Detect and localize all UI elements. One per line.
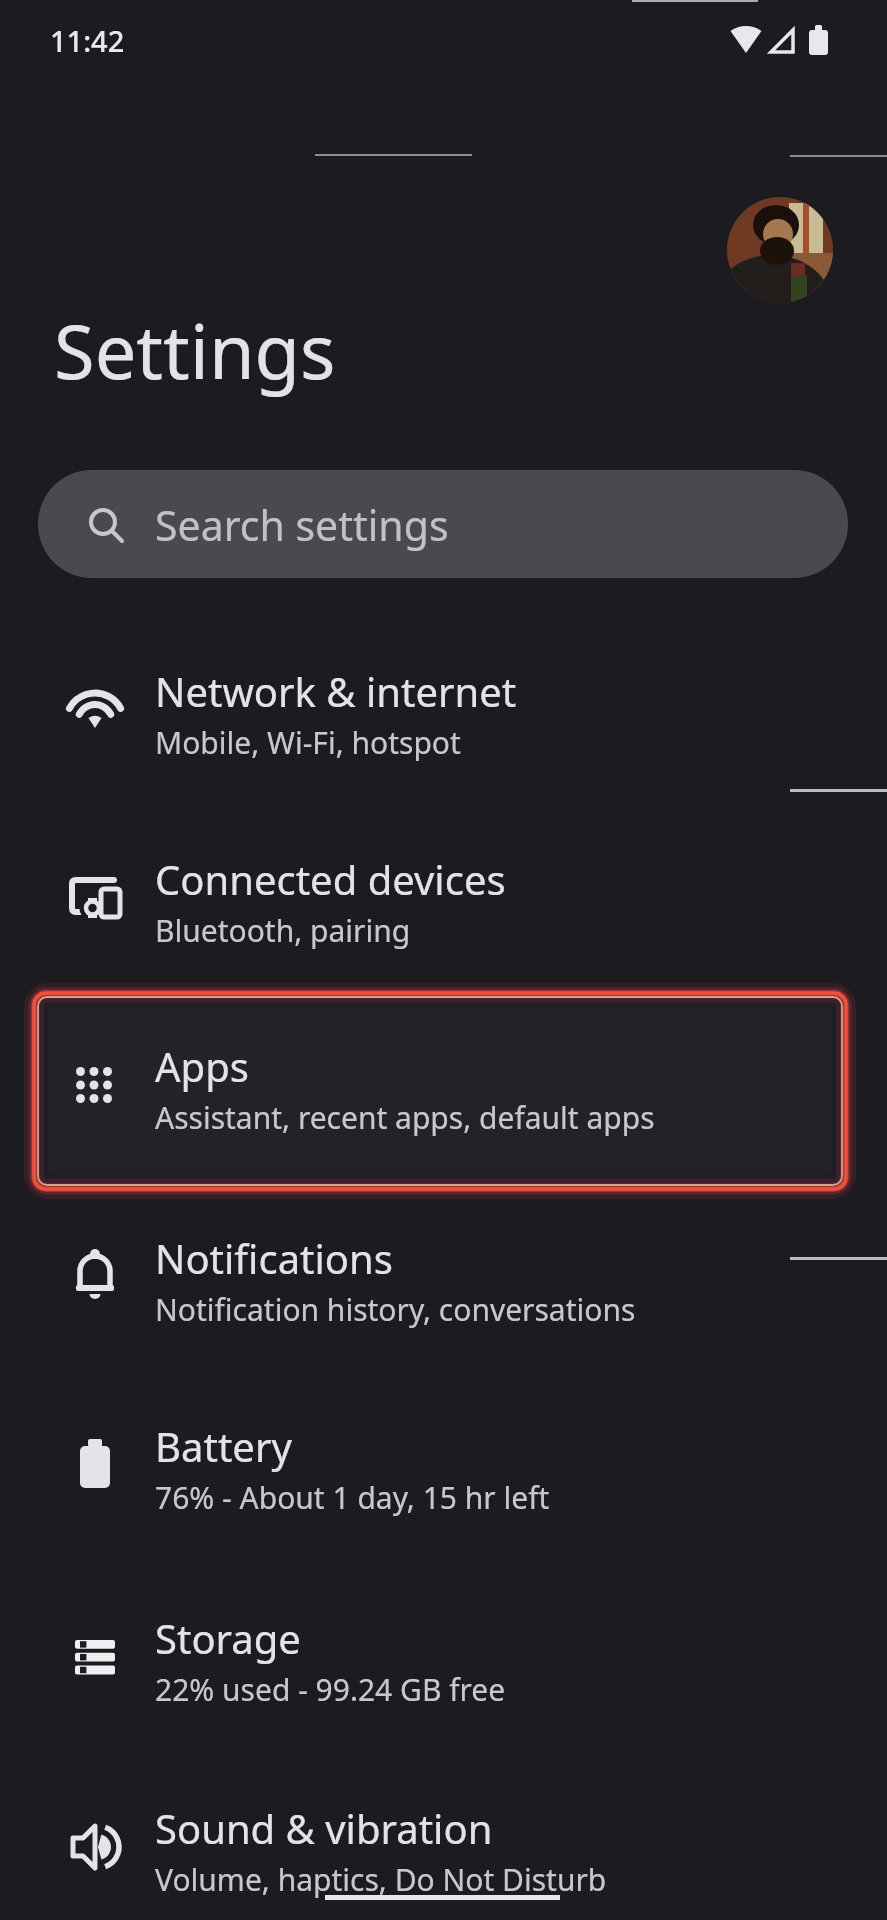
- staticText: Storage: [155, 1611, 301, 1665]
- staticText: Assistant, recent apps, default apps: [155, 1097, 655, 1138]
- button[interactable]: [0, 616, 887, 805]
- button[interactable]: Search settings: [38, 470, 848, 578]
- staticText: Connected devices: [155, 852, 506, 906]
- staticText: Network & internet: [155, 664, 517, 718]
- button[interactable]: [0, 991, 887, 1180]
- staticText: Notifications: [155, 1231, 393, 1285]
- staticText: Mobile, Wi-Fi, hotspot: [155, 722, 461, 763]
- staticText: 11:42: [50, 21, 125, 60]
- button[interactable]: [0, 804, 887, 993]
- button[interactable]: [0, 1753, 887, 1920]
- staticText: Bluetooth, pairing: [155, 910, 411, 951]
- button[interactable]: [727, 197, 833, 303]
- staticText: 22% used - 99.24 GB free: [155, 1669, 506, 1710]
- staticText: Sound & vibration: [155, 1801, 493, 1855]
- staticText: Battery: [155, 1419, 292, 1473]
- staticText: Settings: [54, 300, 336, 401]
- staticText: Apps: [155, 1039, 249, 1093]
- button[interactable]: [0, 1371, 887, 1560]
- button[interactable]: [0, 1183, 887, 1372]
- staticText: Notification history, conversations: [155, 1289, 636, 1330]
- staticText: Search settings: [155, 497, 449, 553]
- button[interactable]: [0, 1563, 887, 1752]
- staticText: Volume, haptics, Do Not Disturb: [155, 1859, 607, 1900]
- staticText: 76% - About 1 day, 15 hr left: [155, 1477, 550, 1518]
